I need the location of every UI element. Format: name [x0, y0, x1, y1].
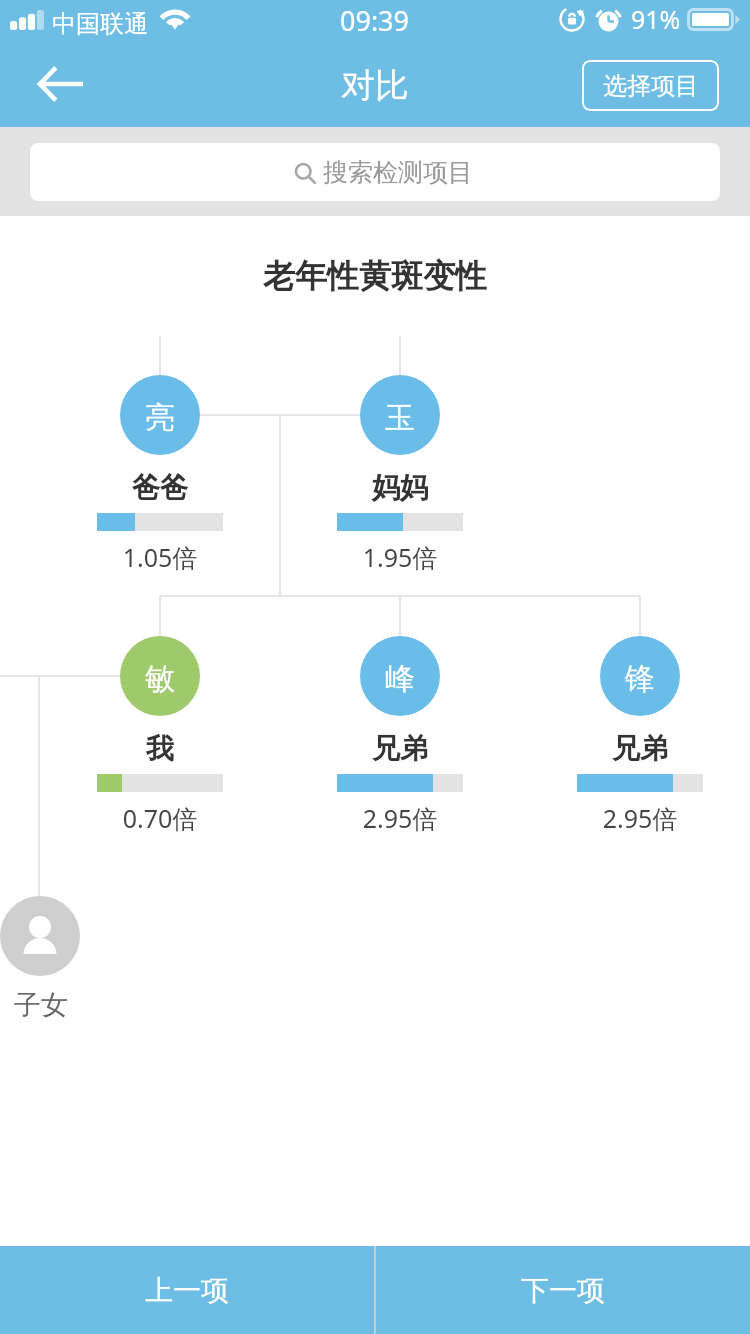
staticText: 91% — [631, 2, 681, 36]
staticText: 子女 — [14, 988, 68, 1022]
staticText: 老年性黄斑变性 — [263, 256, 487, 296]
button[interactable]: 上一项 — [0, 1246, 374, 1334]
staticText: 上一项 — [145, 1273, 229, 1308]
button[interactable]: 锋 — [570, 636, 710, 835]
staticText: 搜索检测项目 — [323, 157, 473, 188]
button[interactable]: 子女 — [0, 896, 80, 976]
staticText: 2.95倍 — [570, 801, 710, 835]
staticText: 2.95倍 — [330, 801, 470, 835]
button[interactable]: 敏 — [90, 636, 230, 835]
staticText: 对比 — [341, 64, 409, 107]
staticText: 1.95倍 — [330, 540, 470, 574]
staticText: 我 — [90, 731, 230, 766]
staticText: 亮 — [145, 399, 175, 437]
button[interactable]: 峰 — [330, 636, 470, 835]
staticText: 妈妈 — [330, 470, 470, 505]
staticText: 0.70倍 — [90, 801, 230, 835]
button[interactable]: 玉 — [330, 375, 470, 574]
staticText: 爸爸 — [90, 470, 230, 505]
staticText: 兄弟 — [570, 731, 710, 766]
staticText: 09:39 — [340, 2, 410, 39]
button[interactable]: 选择项目 — [582, 60, 719, 111]
button[interactable]: 搜索检测项目 — [30, 143, 720, 201]
button[interactable]: 下一项 — [376, 1246, 750, 1334]
staticText: 选择项目 — [603, 71, 699, 101]
staticText: 玉 — [385, 399, 415, 437]
staticText: 锋 — [625, 660, 655, 698]
staticText: 敏 — [145, 660, 175, 698]
button[interactable]: 亮 — [90, 375, 230, 574]
staticText: 下一项 — [521, 1273, 605, 1308]
staticText: 峰 — [385, 660, 415, 698]
staticText: 中国联通 — [52, 9, 148, 39]
button[interactable]: Back — [32, 58, 88, 114]
staticText: 1.05倍 — [90, 540, 230, 574]
staticText: 兄弟 — [330, 731, 470, 766]
